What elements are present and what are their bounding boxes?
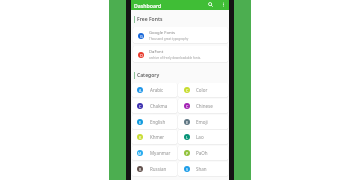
staticText: DaFont bbox=[149, 49, 164, 55]
staticText: Thousand great typography bbox=[149, 37, 189, 41]
staticText: L bbox=[186, 135, 188, 140]
staticText: D bbox=[140, 53, 143, 58]
button[interactable]: R bbox=[132, 162, 177, 176]
staticText: Chakma bbox=[150, 103, 168, 109]
button[interactable]: L bbox=[178, 130, 228, 144]
staticText: P bbox=[186, 151, 189, 156]
button[interactable]: C bbox=[178, 99, 228, 113]
button[interactable]: More options bbox=[219, 0, 227, 8]
button[interactable]: E bbox=[132, 115, 177, 129]
button[interactable]: A bbox=[132, 83, 177, 97]
staticText: Chinese bbox=[196, 103, 213, 109]
button[interactable]: D bbox=[133, 46, 228, 62]
button[interactable]: C bbox=[178, 83, 228, 97]
staticText: Arabic bbox=[150, 87, 164, 93]
staticText: A bbox=[139, 88, 142, 93]
staticText: Shan bbox=[196, 166, 207, 172]
staticText: Free Fonts bbox=[137, 16, 163, 23]
staticText: Emoji bbox=[196, 119, 208, 125]
staticText: Category bbox=[137, 72, 160, 79]
staticText: G bbox=[140, 34, 143, 39]
button[interactable]: M bbox=[132, 146, 177, 160]
button[interactable]: E bbox=[178, 115, 228, 129]
staticText: C bbox=[186, 88, 189, 93]
staticText: M bbox=[138, 151, 142, 156]
staticText: S bbox=[186, 167, 188, 172]
staticText: K bbox=[139, 135, 142, 140]
staticText: Khmer bbox=[150, 134, 165, 140]
button[interactable]: G bbox=[133, 27, 228, 43]
staticText: Lao bbox=[196, 134, 204, 140]
staticText: Color bbox=[196, 87, 208, 93]
staticText: Dashboard bbox=[134, 2, 162, 9]
button[interactable]: P bbox=[178, 146, 228, 160]
staticText: Myanmar bbox=[150, 150, 171, 156]
button[interactable]: Search bbox=[206, 0, 214, 8]
staticText: C bbox=[139, 104, 142, 109]
staticText: English bbox=[150, 119, 166, 125]
button[interactable]: C bbox=[132, 99, 177, 113]
staticText: archive of freely downloadable fonts. bbox=[149, 56, 201, 60]
staticText: Google Fonts bbox=[149, 30, 176, 36]
staticText: E bbox=[139, 120, 141, 125]
button[interactable]: K bbox=[132, 130, 177, 144]
staticText: C bbox=[186, 104, 189, 109]
staticText: PaOh bbox=[196, 150, 208, 156]
button[interactable]: S bbox=[178, 162, 228, 176]
staticText: E bbox=[186, 120, 188, 125]
staticText: Russian bbox=[150, 166, 167, 172]
staticText: R bbox=[139, 167, 142, 172]
